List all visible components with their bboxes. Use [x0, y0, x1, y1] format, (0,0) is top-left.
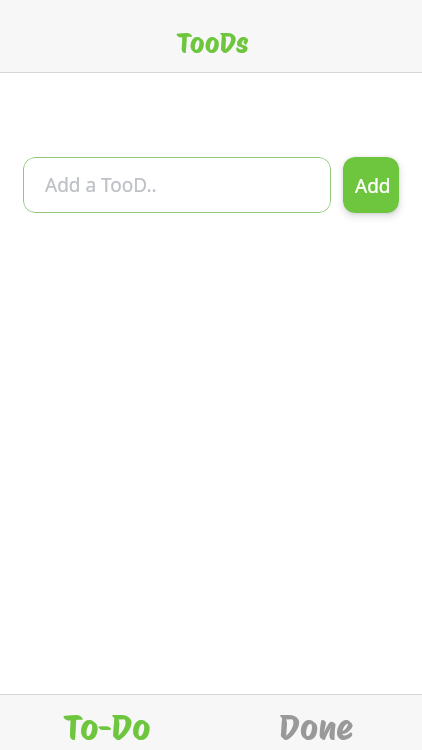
- staticText: TooDs: [177, 26, 249, 60]
- staticText: To-Do: [64, 706, 151, 748]
- button[interactable]: To-Do: [0, 695, 211, 750]
- staticText: Add: [355, 173, 391, 199]
- button[interactable]: Done: [211, 695, 422, 750]
- button[interactable]: Add: [343, 157, 399, 213]
- button[interactable]: Add a TooD..: [23, 157, 331, 213]
- staticText: Add a TooD..: [45, 172, 157, 198]
- staticText: Done: [279, 706, 354, 748]
